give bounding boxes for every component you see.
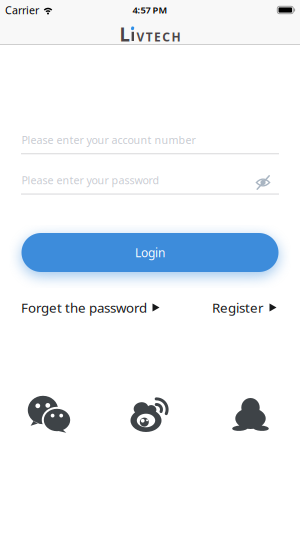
staticText: T [146, 29, 153, 45]
staticText: Forget the password [21, 299, 147, 316]
staticText: 4:57 PM [132, 4, 167, 16]
staticText: Register [212, 299, 264, 316]
button[interactable]: L [118, 22, 182, 44]
staticText: Please enter your account number [21, 133, 195, 147]
staticText: E [154, 29, 161, 45]
button[interactable] [255, 174, 271, 191]
button[interactable] [232, 398, 268, 431]
staticText: Login [135, 244, 165, 260]
staticText: C [162, 29, 170, 45]
staticText: Please enter your password [21, 173, 159, 187]
staticText: H [171, 29, 180, 45]
button[interactable] [27, 395, 71, 433]
button[interactable]: Forget the password [21, 299, 160, 316]
staticText: L [119, 22, 129, 47]
button[interactable] [128, 397, 170, 437]
button[interactable]: Login [21, 233, 278, 272]
button[interactable]: Please enter your password [21, 173, 279, 195]
staticText: V [137, 29, 145, 45]
staticText: Carrier [5, 3, 39, 17]
button[interactable]: Please enter your account number [21, 133, 279, 154]
button[interactable]: Register [212, 299, 277, 316]
